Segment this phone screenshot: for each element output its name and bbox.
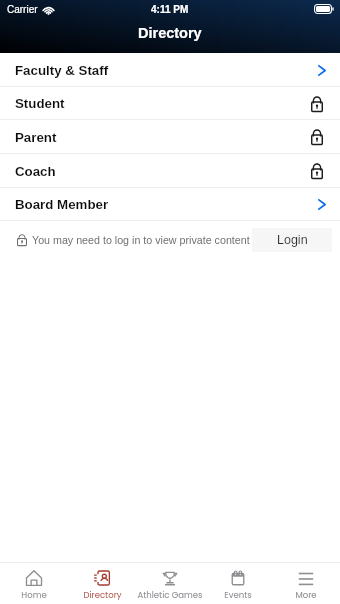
button[interactable]: Home [0, 563, 68, 604]
button[interactable]: Directory [68, 563, 136, 604]
staticText: Athletic Games [137, 589, 203, 601]
staticText: More [295, 589, 317, 601]
staticText: 4:11 PM [151, 4, 189, 15]
staticText: Student [15, 96, 65, 111]
button[interactable]: Events [204, 563, 272, 604]
button[interactable]: Login [252, 228, 332, 252]
button[interactable]: Parent [0, 120, 340, 154]
staticText: Parent [15, 130, 57, 145]
staticText: Login [277, 233, 308, 247]
button[interactable]: Coach [0, 154, 340, 188]
staticText: You may need to log in to view private c… [32, 234, 250, 246]
button[interactable]: More [272, 563, 340, 604]
staticText: Faculty & Staff [15, 63, 109, 78]
button[interactable]: Athletic Games [136, 563, 204, 604]
staticText: Carrier [7, 4, 38, 15]
staticText: Home [21, 589, 47, 601]
button[interactable]: Faculty & Staff [0, 53, 340, 87]
staticText: Directory [138, 25, 202, 41]
staticText: Directory [83, 589, 122, 601]
button[interactable]: Student [0, 87, 340, 120]
staticText: Board Member [15, 197, 109, 212]
staticText: Events [224, 589, 252, 601]
button[interactable]: Board Member [0, 188, 340, 221]
staticText: Coach [15, 164, 56, 179]
